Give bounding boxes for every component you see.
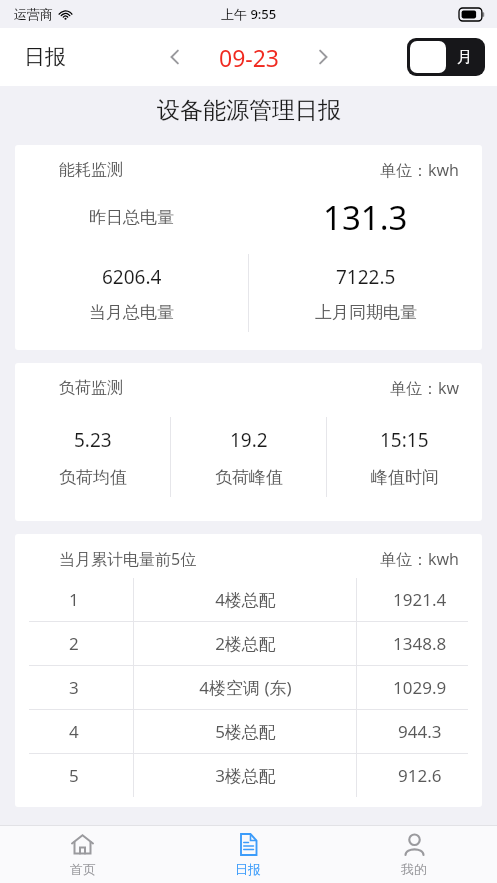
button[interactable]: 日报: [20, 40, 70, 74]
staticText: 月: [457, 48, 472, 67]
staticText: 6206.4: [102, 264, 162, 290]
staticText: 负荷峰值: [215, 467, 283, 488]
staticText: 负荷监测: [59, 378, 123, 398]
staticText: 我的: [401, 861, 427, 877]
staticText: 能耗监测: [59, 160, 123, 180]
staticText: 1029.9: [393, 676, 447, 699]
staticText: 1: [69, 588, 79, 611]
staticText: 131.3: [323, 195, 408, 240]
button[interactable]: Next day: [304, 38, 342, 76]
staticText: 09-23: [219, 42, 280, 73]
staticText: 运营商: [14, 6, 53, 22]
staticText: 7122.5: [336, 264, 396, 290]
button[interactable]: 1: [15, 578, 482, 621]
button[interactable]: Previous day: [156, 38, 194, 76]
button[interactable]: 日报: [165, 826, 331, 883]
staticText: 单位：kw: [390, 377, 460, 399]
staticText: 当月累计电量前5位: [59, 548, 197, 570]
button[interactable]: 5: [15, 754, 482, 797]
staticText: 3楼总配: [215, 764, 276, 787]
button[interactable]: 首页: [0, 826, 165, 883]
staticText: 4楼总配: [215, 588, 276, 611]
staticText: 1348.8: [393, 632, 447, 655]
staticText: 19.2: [230, 427, 268, 453]
staticText: 日报: [24, 44, 66, 70]
staticText: 944.3: [398, 720, 442, 743]
staticText: 3: [69, 676, 79, 699]
staticText: 15:15: [380, 427, 429, 453]
staticText: 4: [69, 720, 79, 743]
staticText: 2楼总配: [215, 632, 276, 655]
staticText: 4楼空调 (东): [199, 676, 292, 699]
staticText: 单位：kwh: [380, 548, 460, 570]
staticText: 当月总电量: [89, 302, 174, 323]
staticText: 912.6: [398, 764, 442, 787]
staticText: 上午 9:55: [221, 5, 277, 23]
staticText: 单位：kwh: [380, 159, 460, 181]
button[interactable]: 2: [15, 622, 482, 665]
button[interactable]: 我的: [331, 826, 497, 883]
staticText: 负荷均值: [59, 467, 127, 488]
staticText: 5楼总配: [215, 720, 276, 743]
staticText: 1921.4: [393, 588, 447, 611]
button[interactable]: 4: [15, 710, 482, 753]
button[interactable]: 09-23: [194, 42, 304, 73]
staticText: 昨日总电量: [89, 207, 174, 228]
button[interactable]: 月: [407, 38, 485, 76]
staticText: 2: [69, 632, 79, 655]
staticText: 首页: [70, 861, 96, 877]
staticText: 上月同期电量: [315, 302, 417, 323]
button[interactable]: 3: [15, 666, 482, 709]
staticText: 设备能源管理日报: [157, 96, 341, 125]
staticText: 5: [69, 764, 79, 787]
staticText: 峰值时间: [371, 467, 439, 488]
staticText: 日报: [235, 861, 261, 877]
staticText: 5.23: [74, 427, 112, 453]
